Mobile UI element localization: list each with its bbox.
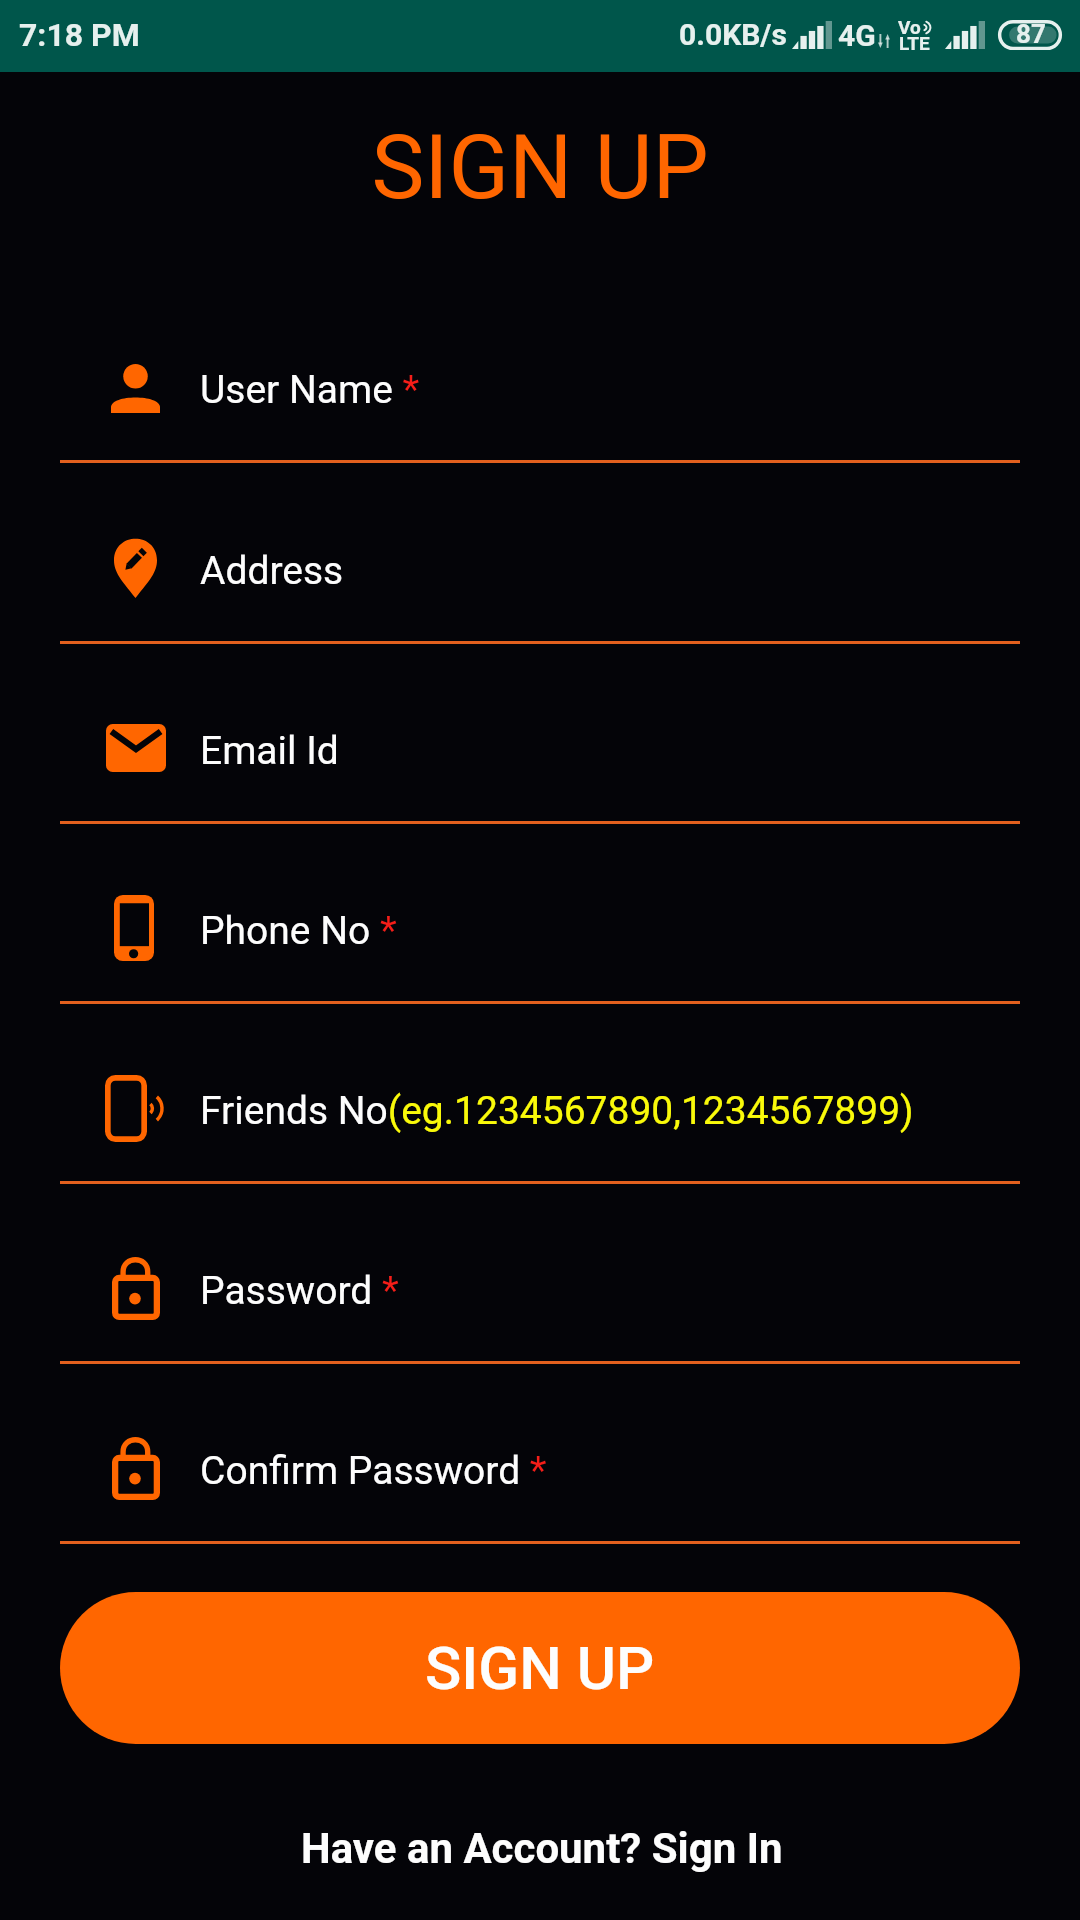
staticText: Confirm Password * bbox=[200, 1448, 547, 1494]
staticText: Vo bbox=[898, 16, 921, 38]
button[interactable]: User name bbox=[0, 327, 1080, 447]
staticText: 4G bbox=[838, 18, 876, 53]
other: Phone number bbox=[114, 895, 154, 961]
button[interactable]: Phone number bbox=[0, 868, 1080, 988]
button[interactable]: SIGN UP bbox=[60, 1592, 1020, 1744]
staticText: Email Id bbox=[200, 728, 339, 774]
button[interactable]: Password bbox=[0, 1228, 1080, 1348]
button[interactable]: Friends numbers bbox=[0, 1048, 1080, 1168]
other: Email address bbox=[106, 724, 166, 772]
staticText: 7:18 PM bbox=[19, 16, 140, 54]
button[interactable]: Email address bbox=[0, 688, 1080, 808]
other: Password bbox=[112, 1437, 160, 1500]
staticText: Password * bbox=[200, 1268, 399, 1314]
other: Password bbox=[112, 1257, 160, 1320]
button[interactable]: Have an Account? Sign In bbox=[291, 1816, 793, 1881]
staticText: SIGN UP bbox=[0, 115, 1080, 219]
staticText: 0.0KB/s bbox=[679, 17, 787, 52]
staticText: Have an Account? Sign In bbox=[301, 1824, 783, 1873]
staticText: Address bbox=[200, 548, 344, 594]
button[interactable]: Password bbox=[0, 1408, 1080, 1528]
staticText: SIGN UP bbox=[425, 1633, 655, 1703]
button[interactable]: Address bbox=[0, 508, 1080, 628]
staticText: Friends No(eg.1234567890,1234567899) bbox=[200, 1088, 914, 1134]
other: Friends numbers bbox=[105, 1075, 165, 1142]
other: Address bbox=[114, 538, 157, 598]
staticText: 87 bbox=[1016, 19, 1046, 49]
staticText: Phone No * bbox=[200, 908, 397, 954]
other: User name bbox=[111, 364, 160, 413]
staticText: User Name * bbox=[200, 367, 420, 413]
staticText: LTE bbox=[899, 32, 930, 54]
